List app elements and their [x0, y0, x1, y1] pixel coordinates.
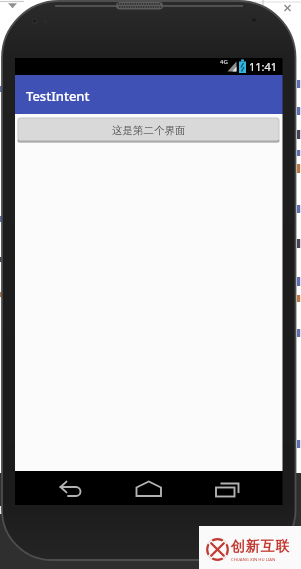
staticText: 4G — [220, 58, 228, 66]
button[interactable] — [48, 473, 92, 503]
button[interactable]: 这是第二个界面 — [17, 117, 280, 143]
button[interactable] — [127, 473, 171, 503]
staticText: 创新互联 — [230, 538, 290, 556]
button[interactable]: 创新互联 — [199, 526, 301, 569]
staticText: TestIntent — [26, 87, 90, 105]
staticText: 这是第二个界面 — [112, 124, 186, 137]
staticText: 11:41 — [249, 59, 278, 74]
staticText: CHUANG XIN HU LIAN — [231, 557, 276, 563]
button[interactable] — [205, 473, 249, 503]
